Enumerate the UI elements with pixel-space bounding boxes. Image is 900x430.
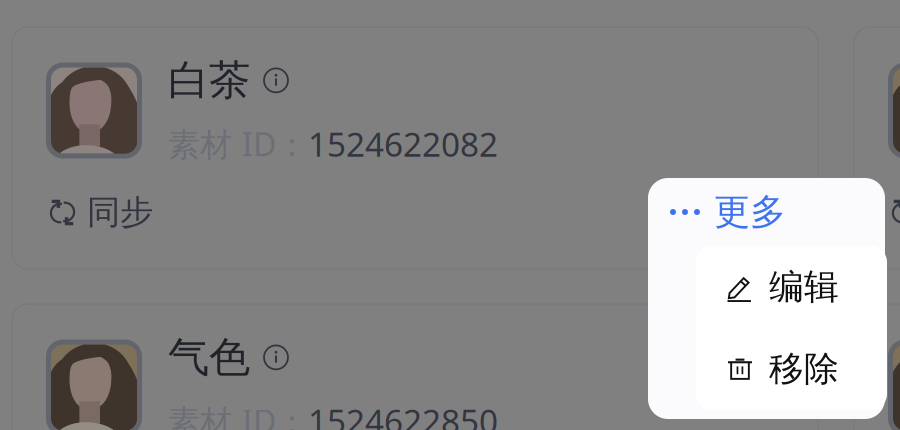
staticText: 更多 xyxy=(714,190,786,234)
staticText: 气色 xyxy=(168,332,250,383)
button[interactable]: 更多 xyxy=(648,178,885,246)
staticText: 同步 xyxy=(87,192,153,233)
staticText: 白茶 xyxy=(168,55,250,106)
staticText: 移除 xyxy=(769,348,839,390)
staticText: 1524622850 xyxy=(308,399,498,430)
button[interactable]: 移除 xyxy=(696,328,887,410)
staticText: 1524622082 xyxy=(308,122,498,166)
staticText: 编辑 xyxy=(769,266,839,308)
staticText: 素材 ID： xyxy=(168,123,308,165)
staticText: 素材 ID： xyxy=(168,400,308,430)
button[interactable]: 编辑 xyxy=(696,246,887,328)
